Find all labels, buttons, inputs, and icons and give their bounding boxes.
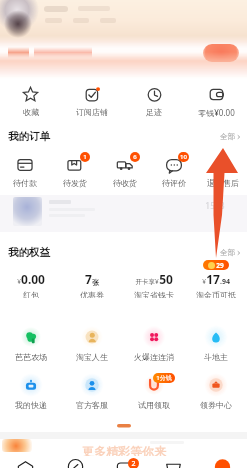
staticText: 红包 (23, 290, 39, 298)
staticText: 退款售后 (207, 178, 239, 188)
staticText: 7 (85, 271, 92, 287)
staticText: 全部 (220, 248, 235, 257)
button[interactable]: 全部 (220, 132, 242, 141)
button[interactable]: 官方客服 (61, 366, 123, 414)
staticText: 优惠券 (80, 290, 104, 298)
staticText: 火爆连连消 (134, 352, 174, 362)
staticText: 开卡享¥ (135, 277, 159, 286)
button[interactable]: 淘宝人生 (61, 318, 123, 366)
staticText: 收藏 (23, 107, 39, 117)
button[interactable]: 7 (61, 266, 123, 298)
button[interactable]: 足迹 (123, 80, 185, 118)
staticText: 淘宝省钱卡 (134, 290, 174, 298)
button[interactable]: 逛逛 (50, 456, 100, 468)
staticText: 足迹 (146, 107, 162, 117)
staticText: .94 (220, 277, 230, 287)
staticText: 待发货 (63, 178, 87, 188)
button[interactable]: 首页 (0, 456, 50, 468)
staticText: 1503 (205, 200, 225, 212)
staticText: 我的订单 (8, 130, 50, 143)
button[interactable]: 试用领取 (123, 366, 185, 414)
button[interactable]: 6 (100, 152, 149, 188)
button[interactable]: 我的 (198, 456, 247, 468)
staticText: 我的快递 (15, 400, 47, 410)
staticText: 29 (216, 261, 224, 270)
staticText: 张 (92, 278, 99, 287)
button[interactable]: ¥ (0, 266, 61, 298)
staticText: 1分钱 (156, 374, 172, 382)
button[interactable]: 订阅店铺 (61, 80, 123, 118)
staticText: 淘金币可抵 (196, 290, 236, 298)
staticText: 更多精彩等你来 (82, 444, 166, 459)
button[interactable]: 全部 (220, 248, 242, 257)
button[interactable]: 斗地主 (185, 318, 247, 366)
staticText: 零钱¥0.00 (198, 107, 235, 118)
button[interactable]: 待付款 (0, 152, 50, 188)
staticText: ¥ (17, 277, 21, 286)
button[interactable]: 芭芭农场 (0, 318, 61, 366)
button[interactable]: 10 (149, 152, 198, 188)
staticText: 2 (131, 459, 136, 468)
staticText: 斗地主 (204, 352, 228, 362)
staticText: 待付款 (13, 178, 37, 188)
button[interactable]: 1 (50, 152, 100, 188)
button[interactable]: 火爆连连消 (123, 318, 185, 366)
staticText: 1 (83, 153, 87, 161)
staticText: 待收货 (113, 178, 137, 188)
button[interactable]: 我的快递 (0, 366, 61, 414)
button[interactable]: 购物车 (149, 456, 198, 468)
button[interactable]: 开卡享¥ (123, 266, 185, 298)
staticText: 官方客服 (76, 400, 108, 410)
staticText: 0.00 (21, 271, 45, 287)
staticText: 我的权益 (8, 246, 50, 259)
button[interactable]: ¥ (185, 266, 247, 298)
staticText: 订阅店铺 (76, 107, 108, 117)
staticText: 淘宝人生 (76, 352, 108, 362)
button[interactable]: 领券中心 (185, 366, 247, 414)
staticText: 待评价 (162, 178, 186, 188)
staticText: 17 (206, 271, 220, 287)
button[interactable]: 消息 (100, 456, 149, 468)
button[interactable]: 退款售后 (198, 152, 247, 188)
staticText: 全部 (220, 132, 235, 141)
staticText: ¥ (202, 277, 206, 286)
staticText: 试用领取 (138, 400, 170, 410)
staticText: 6 (133, 153, 137, 161)
button[interactable]: 零钱¥0.00 (185, 80, 247, 118)
staticText: 50 (159, 271, 173, 287)
staticText: 10 (180, 153, 187, 161)
button[interactable]: 收藏 (0, 80, 61, 118)
staticText: 领券中心 (200, 400, 232, 410)
staticText: 芭芭农场 (15, 352, 47, 362)
